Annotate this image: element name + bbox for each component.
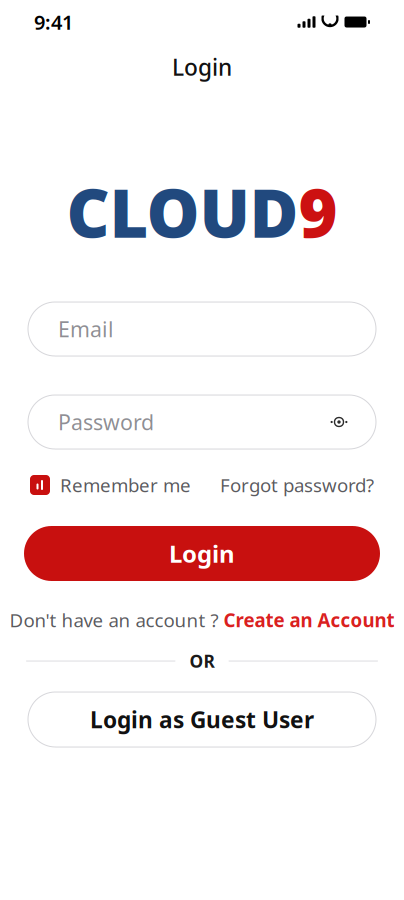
staticText: Login as Guest User [90, 704, 314, 734]
staticText: Don't have an account ? [9, 608, 218, 632]
staticText: Remember me [60, 473, 191, 497]
staticText: Email [58, 315, 114, 343]
staticText: 9:41 [34, 9, 73, 35]
button[interactable]: Login as Guest User [28, 692, 376, 747]
staticText: OR [189, 649, 214, 672]
button[interactable]: Show password [324, 407, 354, 437]
button[interactable]: Create an Account [223, 608, 394, 632]
staticText: Login [169, 538, 235, 569]
staticText: 9 [298, 168, 337, 256]
staticText: CLOUD [66, 168, 298, 256]
button[interactable]: Remember me [30, 473, 191, 497]
staticText: Login [172, 52, 232, 82]
button[interactable]: Forgot password? [220, 473, 374, 497]
staticText: Forgot password? [220, 473, 374, 497]
button[interactable]: Login [24, 526, 380, 581]
staticText: Create an Account [223, 608, 394, 632]
staticText: Password [58, 408, 154, 436]
